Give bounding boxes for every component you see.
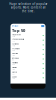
staticText: MAD [12,54,15,56]
staticText: FRA [12,50,15,51]
staticText: MUC [12,68,15,70]
button[interactable]: Munich [11,66,45,71]
staticText: Top 50 [12,28,25,33]
button[interactable]: Heathrow [11,33,45,38]
staticText: AMS [12,45,15,47]
staticText: BCN [12,73,15,75]
button[interactable]: El Prat [11,71,45,75]
button[interactable]: Istanbul [11,57,45,61]
staticText: Fiumicino [12,62,18,64]
staticText: Frankfurt [12,48,20,50]
staticText: Charles de Gaulle [12,38,24,40]
staticText: LHR [12,35,15,37]
button[interactable]: Barajas [11,52,45,57]
staticText: Munich [12,67,17,68]
staticText: Heathrow [12,34,20,35]
button[interactable]: Frankfurt [11,47,45,52]
staticText: Istanbul [12,57,18,59]
staticText: ▮▮▮ [41,24,44,27]
staticText: Zurich [12,76,17,78]
button[interactable]: Zurich [11,75,45,80]
staticText: 9:41 [12,24,19,28]
staticText: Huge selection of popular airports. More… [9,2,47,13]
staticText: Barajas [12,52,18,54]
staticText: FCO [12,64,15,65]
staticText: CDG [12,40,15,42]
staticText: Schiphol [12,43,18,45]
button[interactable]: Schiphol [11,42,45,47]
button[interactable]: Fiumicino [11,61,45,66]
staticText: El Prat [12,71,17,73]
staticText: ZRH [12,78,15,80]
button[interactable]: Charles de Gaulle [11,38,45,43]
